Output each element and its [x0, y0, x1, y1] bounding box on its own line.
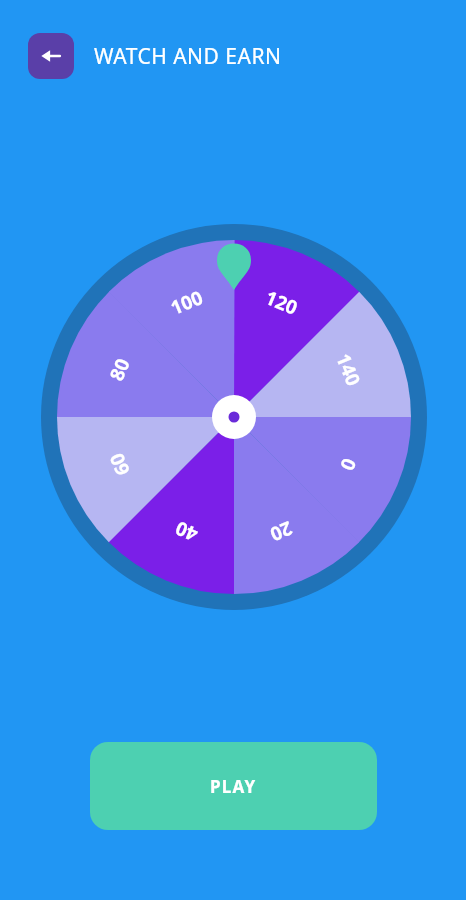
- button[interactable]: Back: [28, 33, 74, 79]
- staticText: WATCH AND EARN: [94, 42, 282, 71]
- button[interactable]: PLAY: [90, 742, 377, 830]
- staticText: PLAY: [210, 775, 257, 798]
